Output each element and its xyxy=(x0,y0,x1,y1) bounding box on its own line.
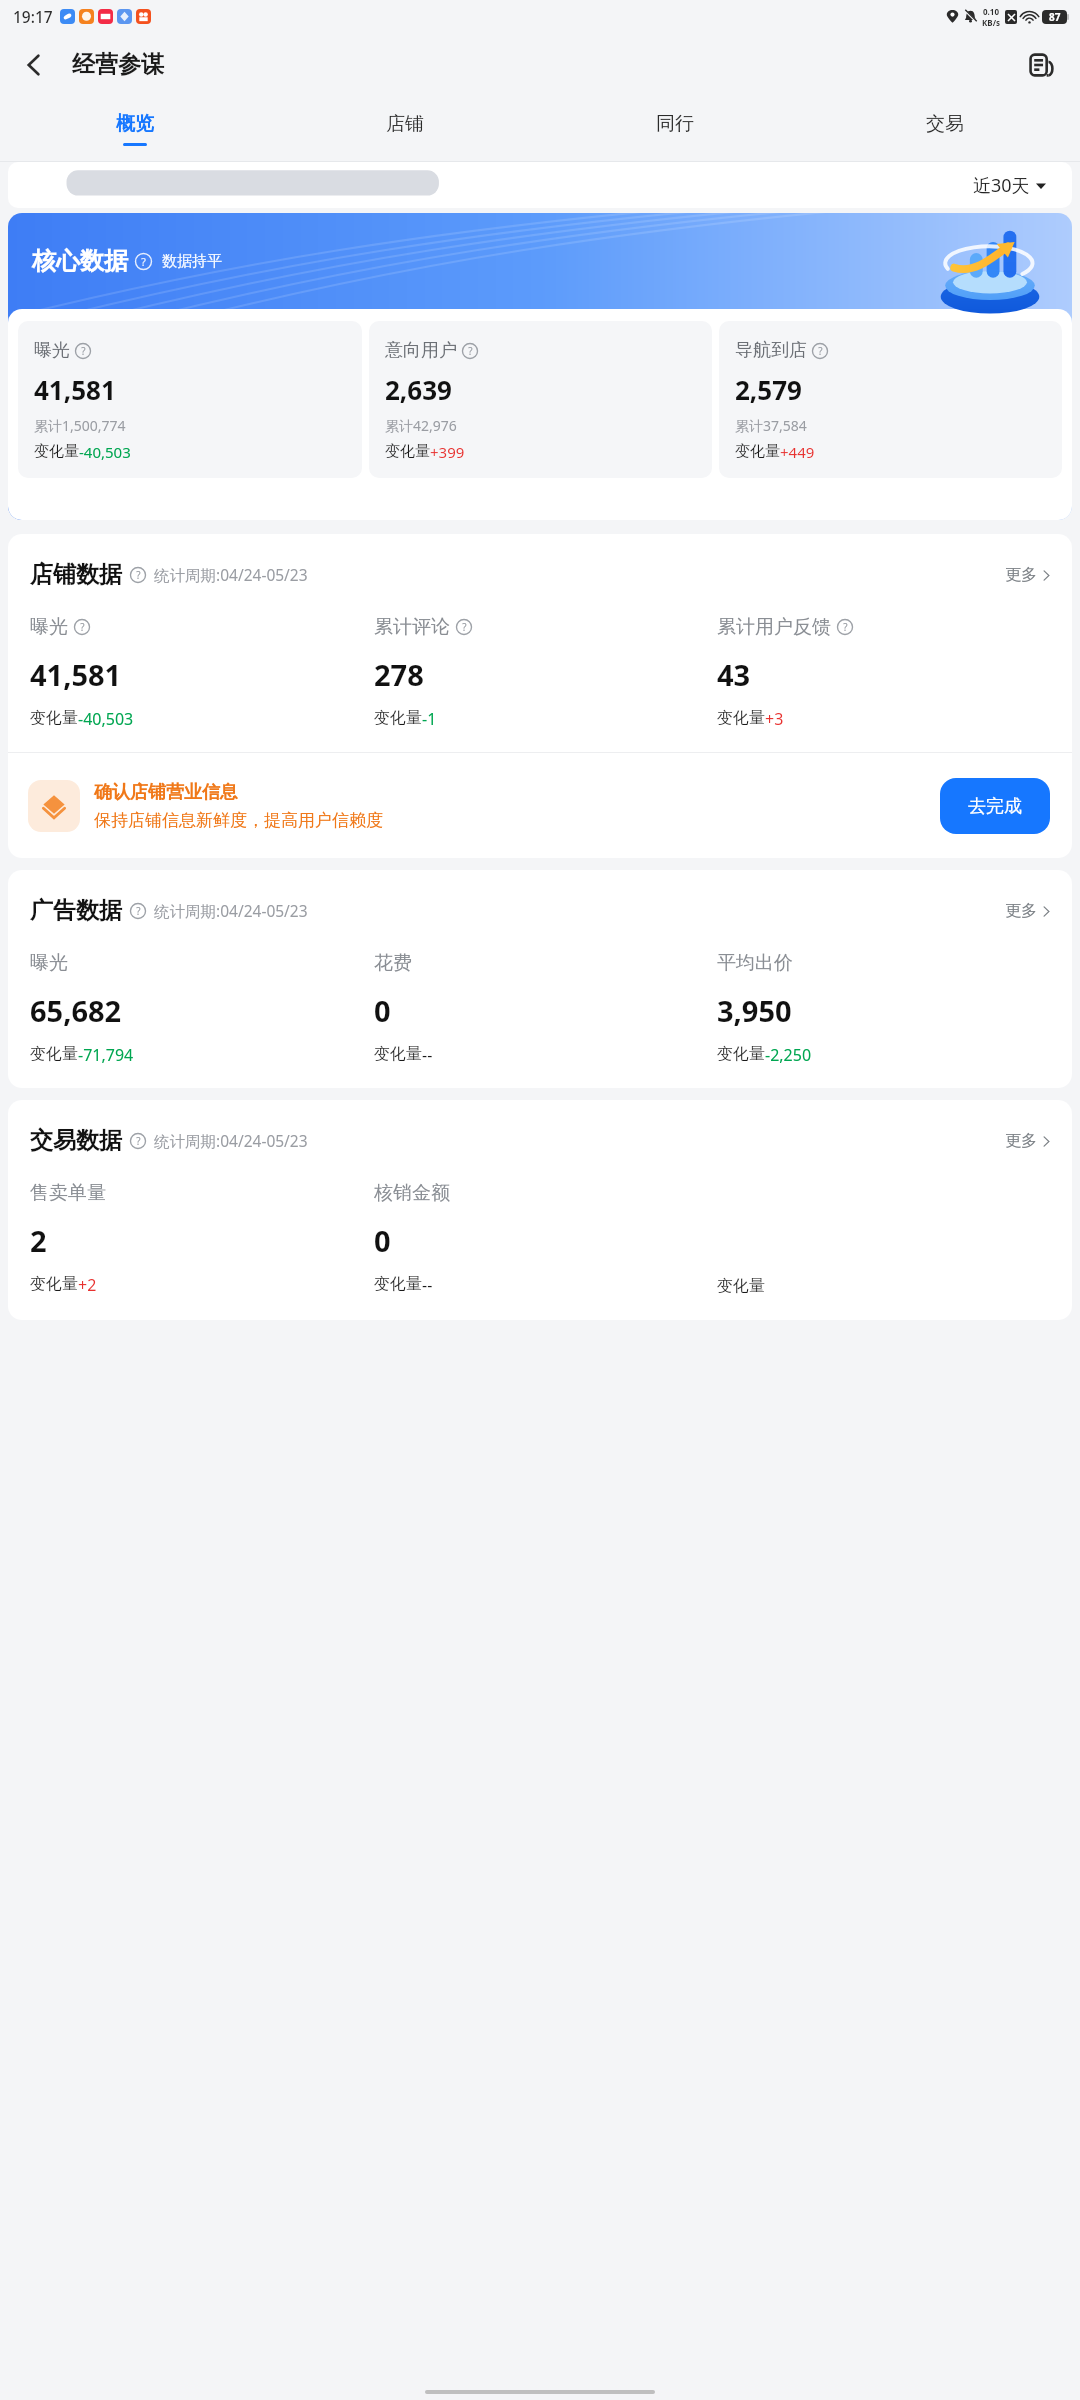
staticText: 花费 xyxy=(374,951,412,975)
staticText: 累计37,584 xyxy=(735,416,807,435)
staticText: 曝光 xyxy=(34,339,70,362)
button[interactable]: Back xyxy=(8,39,60,91)
staticText: 41,581 xyxy=(34,372,116,407)
staticText: -- xyxy=(422,1274,433,1296)
staticText: 变化量 xyxy=(374,708,422,728)
staticText: -71,794 xyxy=(78,1044,134,1066)
staticText: 同行 xyxy=(656,112,694,136)
staticText: ? xyxy=(462,620,467,634)
button[interactable]: Report xyxy=(1018,41,1066,89)
staticText: 累计评论 xyxy=(374,615,450,639)
button[interactable]: 更多 xyxy=(1005,1131,1052,1151)
staticText: 核心数据 xyxy=(32,246,128,276)
staticText: ? xyxy=(136,904,141,918)
staticText: 278 xyxy=(374,655,424,694)
staticText: 导航到店 xyxy=(735,339,807,362)
staticText: -40,503 xyxy=(78,708,134,730)
staticText: 3,950 xyxy=(717,991,792,1030)
staticText: ? xyxy=(80,620,85,634)
staticText: -2,250 xyxy=(765,1044,812,1066)
staticText: 43 xyxy=(717,655,751,694)
button[interactable]: 意向用户 xyxy=(369,321,712,478)
staticText: 统计周期:04/24-05/23 xyxy=(154,900,308,921)
staticText: 意向用户 xyxy=(385,339,457,362)
staticText: ? xyxy=(843,620,848,634)
staticText: 更多 xyxy=(1005,1131,1037,1151)
staticText: 交易数据 xyxy=(30,1126,122,1155)
staticText: 变化量 xyxy=(30,1274,78,1294)
staticText: 累计42,976 xyxy=(385,416,457,435)
staticText: KB/s xyxy=(982,17,1000,28)
staticText: 曝光 xyxy=(30,615,68,639)
button[interactable]: 更多 xyxy=(1005,901,1052,921)
staticText: ? xyxy=(81,344,86,358)
staticText: ? xyxy=(136,568,141,582)
staticText: 变化量 xyxy=(717,1276,765,1296)
staticText: +2 xyxy=(78,1274,97,1296)
staticText: -40,503 xyxy=(79,442,131,462)
staticText: 0.10 xyxy=(983,6,999,17)
button[interactable]: 去完成 xyxy=(940,778,1050,834)
button[interactable]: 近30天 xyxy=(973,173,1046,198)
staticText: 41,581 xyxy=(30,655,122,694)
staticText: 平均出价 xyxy=(717,951,793,975)
staticText: 确认店铺营业信息 xyxy=(94,781,238,804)
staticText: 2 xyxy=(30,1221,47,1260)
staticText: 变化量 xyxy=(374,1044,422,1064)
staticText: 概览 xyxy=(116,112,154,136)
staticText: 核销金额 xyxy=(374,1181,450,1205)
staticText: ? xyxy=(818,344,823,358)
staticText: 交易 xyxy=(926,112,964,136)
staticText: 售卖单量 xyxy=(30,1181,106,1205)
staticText: 近30天 xyxy=(973,173,1030,198)
staticText: 变化量 xyxy=(385,442,430,461)
staticText: 累计用户反馈 xyxy=(717,615,831,639)
staticText: -1 xyxy=(422,708,437,730)
staticText: 数据持平 xyxy=(162,252,222,271)
staticText: 变化量 xyxy=(735,442,780,461)
staticText: +449 xyxy=(780,442,815,462)
staticText: 更多 xyxy=(1005,901,1037,921)
staticText: 0 xyxy=(374,991,391,1030)
staticText: 店铺数据 xyxy=(30,560,122,589)
staticText: 变化量 xyxy=(34,442,79,461)
staticText: 65,682 xyxy=(30,991,122,1030)
staticText: 曝光 xyxy=(30,951,68,975)
button[interactable]: 交易 xyxy=(810,96,1080,161)
button[interactable]: 概览 xyxy=(0,96,270,161)
staticText: +399 xyxy=(430,442,465,462)
staticText: 更多 xyxy=(1005,565,1037,585)
staticText: 2,579 xyxy=(735,372,802,407)
staticText: ? xyxy=(468,344,473,358)
staticText: 2,639 xyxy=(385,372,452,407)
button[interactable]: 更多 xyxy=(1005,565,1052,585)
staticText: 19:17 xyxy=(13,6,53,27)
staticText: 统计周期:04/24-05/23 xyxy=(154,1130,308,1151)
button[interactable]: 导航到店 xyxy=(719,321,1062,478)
button[interactable]: 曝光 xyxy=(18,321,362,478)
staticText: +3 xyxy=(765,708,784,730)
staticText: 87 xyxy=(1049,10,1061,24)
staticText: 变化量 xyxy=(717,708,765,728)
staticText: ? xyxy=(136,1134,141,1148)
staticText: 广告数据 xyxy=(30,896,122,925)
staticText: 变化量 xyxy=(30,708,78,728)
staticText: 0 xyxy=(374,1221,391,1260)
staticText: 累计1,500,774 xyxy=(34,416,126,435)
staticText: 变化量 xyxy=(374,1274,422,1294)
staticText: 变化量 xyxy=(717,1044,765,1064)
staticText: 保持店铺信息新鲜度，提高用户信赖度 xyxy=(94,810,383,831)
staticText: 统计周期:04/24-05/23 xyxy=(154,564,308,585)
button[interactable]: 同行 xyxy=(540,96,810,161)
staticText: ? xyxy=(141,255,146,269)
staticText: 店铺 xyxy=(386,112,424,136)
staticText: 经营参谋 xyxy=(72,50,164,79)
staticText: -- xyxy=(422,1044,433,1066)
button[interactable]: 店铺 xyxy=(270,96,540,161)
staticText: 变化量 xyxy=(30,1044,78,1064)
staticText: 去完成 xyxy=(968,795,1022,818)
